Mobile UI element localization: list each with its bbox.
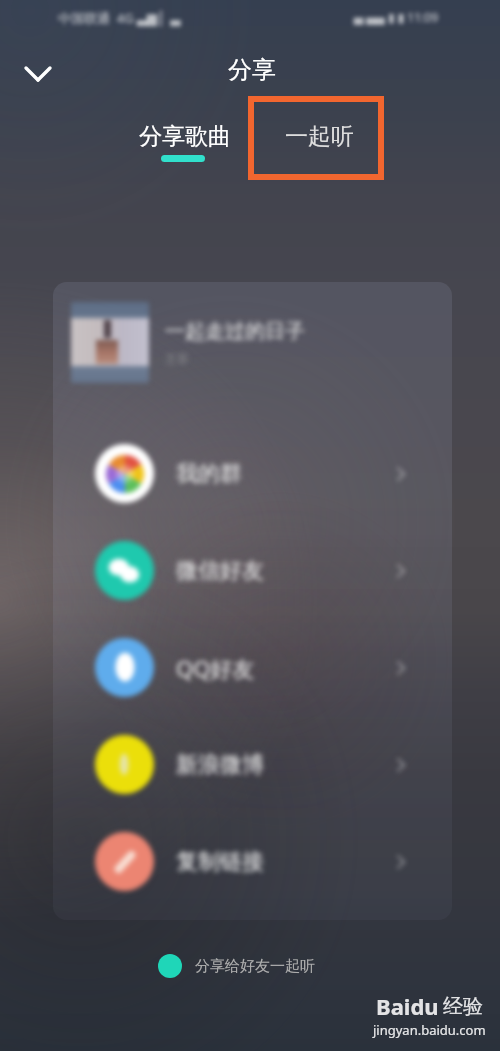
button[interactable]: 微信好友 [53,522,452,619]
staticText: 一起听 [285,122,354,151]
button[interactable]: 分享歌曲 [113,104,253,176]
staticText: 微信好友 [176,557,264,585]
staticText: QQ好友 [176,653,255,683]
staticText: 一起走过的日子 [165,319,305,344]
staticText: 王菲 [165,351,189,366]
staticText: 分享给好友一起听 [195,957,315,976]
staticText: jingyan.baidu.com [373,1021,486,1039]
staticText: Baidu [376,991,439,1021]
staticText: 复制链接 [176,848,264,876]
staticText: 经验 [443,994,483,1019]
staticText: 分享歌曲 [139,122,231,151]
staticText: ▄ ▄▄ ▮ ▮ 11:09 [354,9,439,25]
button[interactable]: 我的群 [53,425,452,522]
button[interactable]: QQ好友 [53,619,452,716]
button[interactable]: 复制链接 [53,813,452,910]
button[interactable]: 分享给好友一起听 [158,954,315,978]
button[interactable]: 一起听 [258,104,378,176]
staticText: 分享 [228,55,276,85]
staticText: 新浪微博 [176,751,264,779]
button[interactable]: Collapse [14,50,62,98]
staticText: 我的群 [176,460,242,488]
button[interactable]: 新浪微博 [53,716,452,813]
staticText: 中国联通 4G ▃▆ ▏▃ [58,9,181,27]
